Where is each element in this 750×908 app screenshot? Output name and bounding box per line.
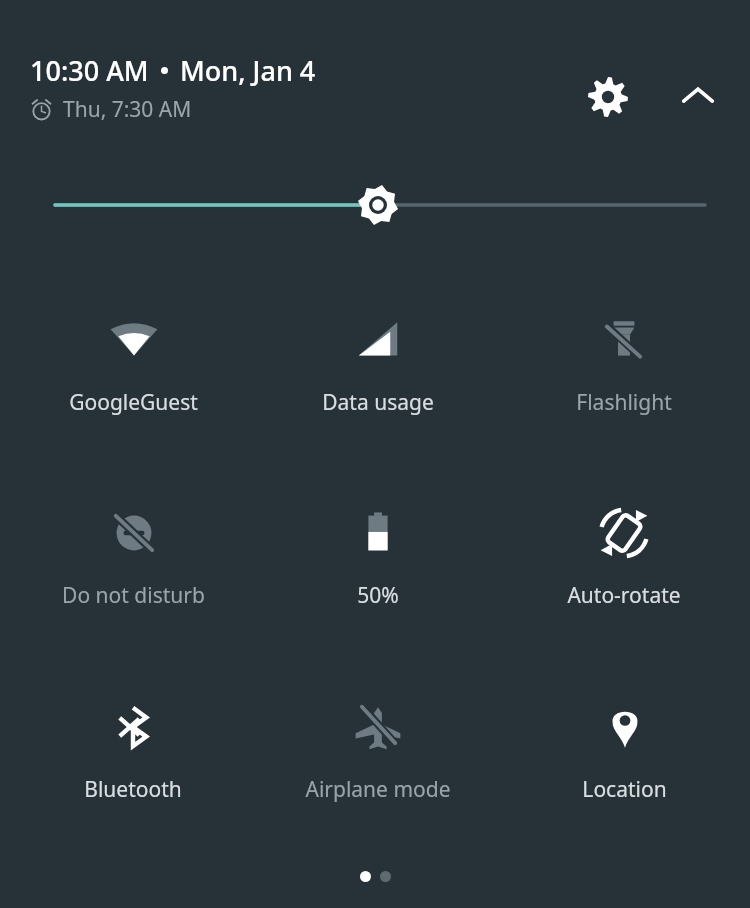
staticText: Bluetooth [84,775,182,804]
button[interactable]: GoogleGuest [13,288,253,438]
staticText: Auto-rotate [567,581,681,610]
button[interactable]: Settings [576,65,640,129]
staticText: Do not disturb [62,581,205,610]
staticText: Mon, Jan 4 [180,52,316,89]
button[interactable]: Bluetooth [13,675,253,825]
button[interactable]: Location [504,675,744,825]
staticText: GoogleGuest [69,388,198,417]
button[interactable]: Collapse [666,65,730,129]
staticText: 50% [357,581,399,610]
button[interactable]: Brightness [0,172,750,238]
button[interactable]: Flashlight [504,288,744,438]
staticText: Flashlight [576,388,672,417]
button[interactable]: Airplane mode [258,675,498,825]
button[interactable]: Page 1 [360,871,371,882]
button[interactable]: 50% [258,481,498,631]
button[interactable]: Do not disturb [13,481,253,631]
staticText: 10:30 AM [30,52,149,89]
staticText: Location [582,775,667,804]
button[interactable]: Data usage [258,288,498,438]
staticText: Data usage [322,388,434,417]
button[interactable]: Auto-rotate [504,481,744,631]
staticText: Airplane mode [305,775,451,804]
staticText: Thu, 7:30 AM [63,95,192,124]
button[interactable]: Page 2 [380,871,391,882]
